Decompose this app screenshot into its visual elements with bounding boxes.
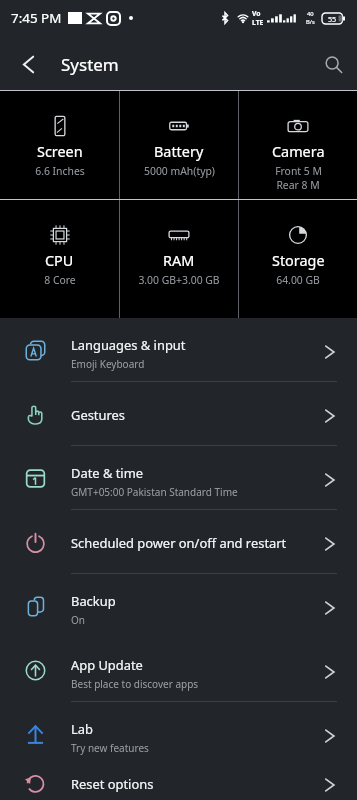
button[interactable]: Scheduled power on/off and restart bbox=[0, 510, 357, 574]
staticText: 5000 mAh(typ) bbox=[144, 164, 215, 178]
staticText: Camera bbox=[272, 142, 325, 162]
staticText: System bbox=[61, 53, 119, 76]
staticText: Try new features bbox=[71, 741, 149, 755]
staticText: LTE bbox=[252, 18, 264, 27]
button[interactable]: Reset options bbox=[0, 766, 357, 800]
staticText: Screen bbox=[37, 142, 83, 162]
staticText: Date & time bbox=[71, 464, 144, 482]
staticText: 8 Core bbox=[44, 273, 76, 287]
staticText: Reset options bbox=[71, 775, 154, 793]
staticText: 7:45 PM bbox=[11, 9, 62, 27]
staticText: 3.00 GB+3.00 GB bbox=[138, 273, 220, 287]
button[interactable]: Camera bbox=[239, 91, 357, 199]
staticText: B/s bbox=[306, 18, 315, 26]
button[interactable]: CPU bbox=[0, 200, 119, 318]
staticText: Scheduled power on/off and restart bbox=[71, 534, 287, 552]
staticText: Backup bbox=[71, 592, 116, 610]
staticText: Vo bbox=[252, 9, 261, 18]
staticText: Best place to discover apps bbox=[71, 677, 199, 691]
staticText: Storage bbox=[272, 251, 325, 271]
staticText: Battery bbox=[154, 142, 204, 162]
staticText: 6.6 Inches bbox=[35, 164, 85, 178]
button[interactable]: App Update bbox=[0, 638, 357, 702]
button[interactable]: Screen bbox=[0, 91, 119, 199]
staticText: 55 bbox=[328, 14, 337, 24]
staticText: Gestures bbox=[71, 406, 125, 424]
button[interactable]: Back bbox=[6, 42, 50, 86]
staticText: CPU bbox=[45, 251, 74, 271]
button[interactable]: Storage bbox=[239, 200, 357, 318]
button[interactable]: Search bbox=[311, 42, 355, 86]
button[interactable]: Battery bbox=[120, 91, 238, 199]
button[interactable]: Languages & input bbox=[0, 318, 357, 382]
staticText: GMT+05:00 Pakistan Standard Time bbox=[71, 485, 238, 499]
button[interactable]: Lab bbox=[0, 702, 357, 766]
staticText: Emoji Keyboard bbox=[71, 357, 145, 371]
button[interactable]: Gestures bbox=[0, 382, 357, 446]
staticText: On bbox=[71, 613, 85, 627]
staticText: Languages & input bbox=[71, 336, 186, 354]
staticText: RAM bbox=[163, 251, 195, 271]
staticText: 64.00 GB bbox=[276, 273, 320, 287]
button[interactable]: RAM bbox=[120, 200, 238, 318]
button[interactable]: Date & time bbox=[0, 446, 357, 510]
button[interactable]: Backup bbox=[0, 574, 357, 638]
staticText: Lab bbox=[71, 720, 93, 738]
staticText: Rear 8 M bbox=[276, 178, 320, 192]
staticText: App Update bbox=[71, 656, 143, 674]
staticText: Front 5 M bbox=[275, 164, 322, 178]
staticText: 40 bbox=[307, 10, 314, 18]
